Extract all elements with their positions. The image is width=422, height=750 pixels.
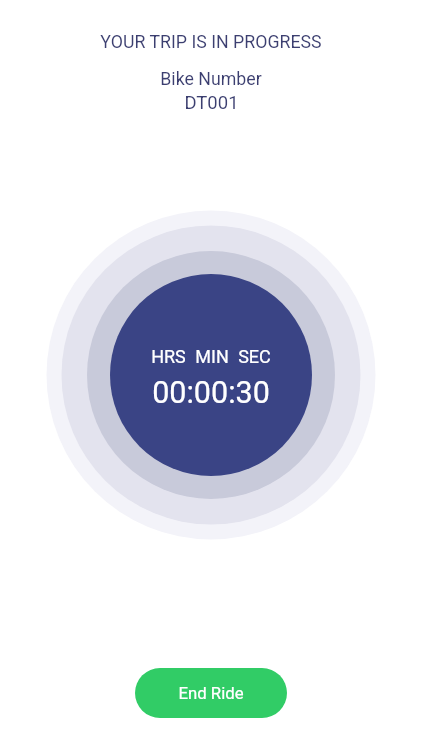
button[interactable]: Elapsed trip time 00 hours 00 minutes 30…: [110, 274, 312, 476]
button[interactable]: End Ride: [135, 668, 287, 718]
staticText: HRS: [151, 346, 186, 367]
staticText: 00:00:30: [152, 375, 270, 411]
staticText: End Ride: [178, 683, 244, 703]
staticText: Bike Number: [160, 69, 262, 90]
staticText: DT001: [184, 92, 239, 114]
staticText: SEC: [238, 346, 271, 367]
staticText: MIN: [195, 346, 229, 367]
staticText: YOUR TRIP IS IN PROGRESS: [100, 32, 322, 53]
